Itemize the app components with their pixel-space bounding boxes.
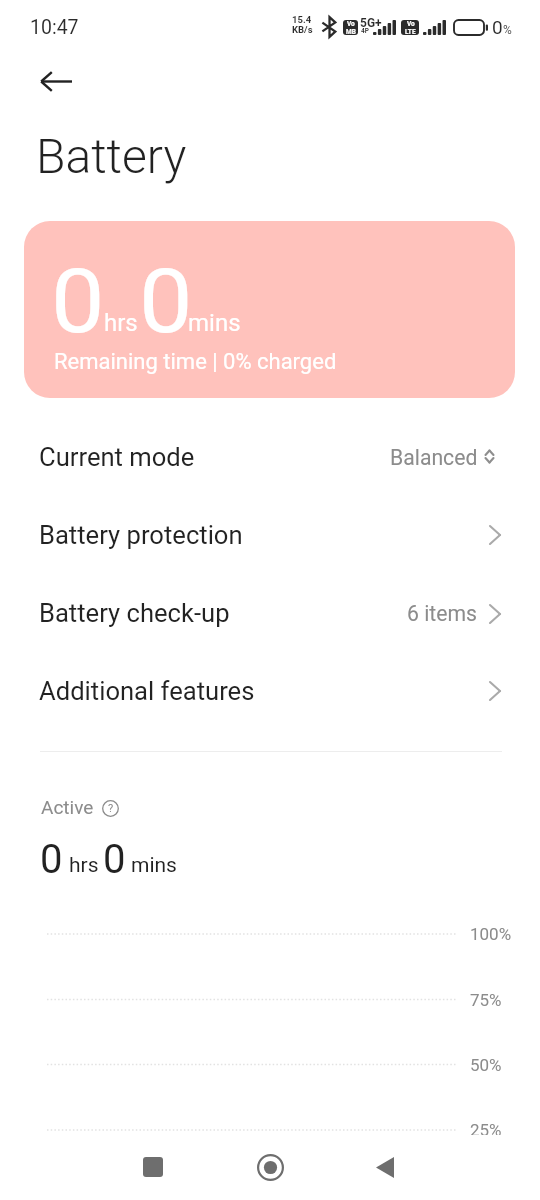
staticText: 10:47 — [30, 16, 79, 39]
staticText: 15.4 KB/s — [292, 14, 313, 36]
button[interactable]: Battery check-up — [0, 574, 540, 652]
button[interactable]: Back — [361, 1143, 409, 1191]
staticText: Battery — [36, 128, 187, 184]
staticText: 25% — [470, 1120, 502, 1135]
staticText: MB — [346, 28, 356, 35]
button[interactable]: Home — [246, 1143, 294, 1191]
staticText: hrs — [104, 309, 138, 337]
staticText: 75% — [470, 990, 502, 1010]
staticText: Additional features — [39, 676, 255, 706]
staticText: 4P — [361, 27, 369, 35]
staticText: Vo — [347, 20, 355, 28]
staticText: Current mode — [39, 442, 195, 472]
button[interactable]: Help — [101, 799, 120, 818]
staticText: 0 — [139, 249, 194, 353]
staticText: ? — [108, 802, 114, 815]
staticText: 100% — [470, 924, 512, 944]
staticText: 50% — [470, 1055, 502, 1075]
staticText: Balanced — [390, 445, 478, 470]
button[interactable]: Recent apps — [129, 1143, 177, 1191]
staticText: Active — [41, 796, 94, 818]
button[interactable]: Back — [32, 57, 80, 105]
staticText: 6 items — [407, 601, 477, 626]
button[interactable]: Battery protection — [0, 496, 540, 574]
staticText: hrs — [69, 853, 99, 878]
staticText: mins — [188, 309, 241, 337]
staticText: Remaining time | 0% charged — [54, 349, 337, 375]
staticText: LTE — [405, 28, 416, 35]
staticText: 0 — [51, 249, 106, 353]
staticText: 0 — [40, 836, 63, 883]
staticText: 5G+ — [360, 16, 382, 30]
staticText: Vo — [407, 20, 415, 28]
button[interactable]: Additional features — [0, 652, 540, 730]
button[interactable]: 0 — [24, 221, 515, 398]
staticText: Battery check-up — [39, 598, 230, 628]
staticText: Battery protection — [39, 520, 243, 550]
staticText: % — [503, 23, 512, 37]
staticText: 0 — [103, 836, 126, 883]
button[interactable]: Current mode — [0, 418, 540, 496]
staticText: mins — [131, 853, 177, 878]
staticText: 0 — [492, 16, 503, 38]
